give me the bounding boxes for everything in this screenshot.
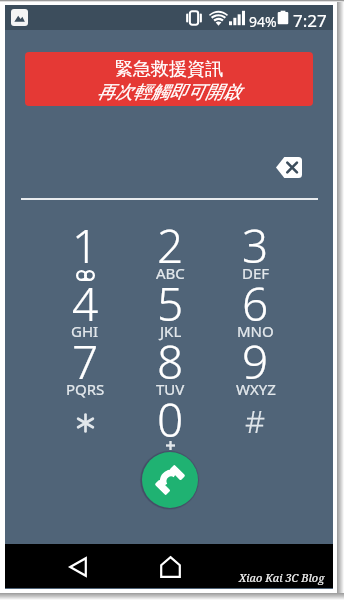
- button[interactable]: 緊急救援資訊: [25, 52, 313, 106]
- staticText: 94%: [249, 12, 277, 31]
- staticText: 9: [242, 330, 269, 388]
- button[interactable]: 7: [42, 330, 128, 388]
- staticText: WXYZ: [236, 379, 276, 399]
- staticText: 8: [157, 330, 184, 388]
- staticText: 0: [157, 388, 184, 446]
- staticText: 6: [242, 272, 269, 330]
- staticText: MNO: [237, 321, 274, 341]
- button[interactable]: 2: [128, 214, 213, 272]
- staticText: 1: [72, 214, 99, 272]
- staticText: 5: [157, 272, 184, 330]
- button[interactable]: 5: [128, 272, 213, 330]
- staticText: 7:27: [293, 9, 327, 32]
- staticText: ABC: [156, 263, 185, 283]
- staticText: 7: [72, 330, 99, 388]
- button[interactable]: Call: [142, 452, 198, 508]
- staticText: Xiao Kai 3C Blog: [239, 570, 325, 585]
- button[interactable]: 1: [42, 214, 128, 272]
- button[interactable]: 0: [128, 388, 213, 446]
- button[interactable]: 9: [213, 330, 298, 388]
- button[interactable]: 6: [213, 272, 298, 330]
- staticText: PQRS: [66, 379, 105, 399]
- button[interactable]: 3: [213, 214, 298, 272]
- staticText: #: [245, 400, 266, 442]
- staticText: GHI: [71, 321, 99, 341]
- staticText: 3: [242, 214, 269, 272]
- button[interactable]: Backspace: [267, 150, 310, 185]
- staticText: 2: [157, 214, 184, 272]
- button[interactable]: #: [213, 388, 298, 446]
- button[interactable]: [42, 388, 128, 446]
- button[interactable]: 4: [42, 272, 128, 330]
- staticText: JKL: [160, 321, 182, 341]
- button[interactable]: 8: [128, 330, 213, 388]
- staticText: 再次輕觸即可開啟: [97, 81, 241, 104]
- staticText: TUV: [156, 379, 185, 399]
- staticText: 4: [72, 272, 99, 330]
- button[interactable]: Home: [151, 548, 189, 586]
- staticText: DEF: [242, 263, 270, 283]
- button[interactable]: Back: [59, 548, 97, 586]
- staticText: 緊急救援資訊: [115, 58, 223, 81]
